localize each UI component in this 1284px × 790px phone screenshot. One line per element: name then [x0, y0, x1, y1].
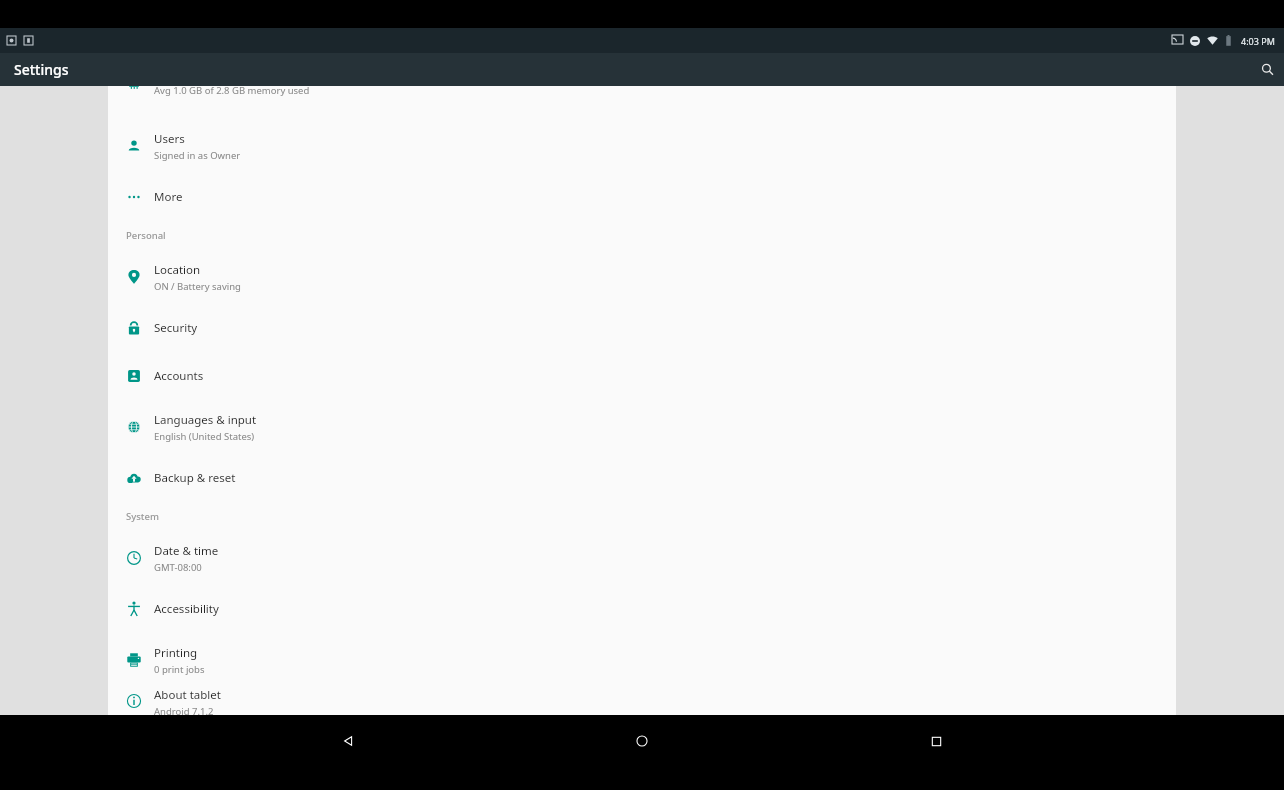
button[interactable]: Back: [327, 720, 369, 762]
staticText: More: [154, 189, 183, 205]
staticText: 0 print jobs: [154, 663, 205, 676]
staticText: Settings: [14, 60, 69, 79]
button[interactable]: Users: [108, 119, 1176, 173]
staticText: Signed in as Owner: [154, 149, 241, 162]
button[interactable]: Recent apps: [915, 720, 957, 762]
staticText: GMT-08:00: [154, 561, 202, 574]
button[interactable]: Home: [621, 720, 663, 762]
button[interactable]: More: [108, 173, 1176, 221]
staticText: ON / Battery saving: [154, 280, 241, 293]
staticText: Users: [154, 131, 185, 147]
button[interactable]: Printing: [108, 633, 1176, 687]
staticText: 4:03 PM: [1241, 35, 1275, 47]
staticText: Accessibility: [154, 601, 219, 617]
button[interactable]: Languages & input: [108, 400, 1176, 454]
staticText: Printing: [154, 645, 198, 661]
staticText: Backup & reset: [154, 470, 236, 486]
staticText: About tablet: [154, 687, 221, 703]
staticText: Languages & input: [154, 412, 257, 428]
staticText: System: [126, 510, 159, 523]
staticText: Android 7.1.2: [154, 705, 214, 715]
button[interactable]: Backup & reset: [108, 454, 1176, 502]
staticText: Date & time: [154, 543, 219, 559]
staticText: English (United States): [154, 430, 255, 443]
staticText: Personal: [126, 229, 166, 242]
button[interactable]: Accounts: [108, 352, 1176, 400]
button[interactable]: Location: [108, 250, 1176, 304]
staticText: Avg 1.0 GB of 2.8 GB memory used: [154, 86, 310, 97]
button[interactable]: Accessibility: [108, 585, 1176, 633]
staticText: Security: [154, 320, 198, 336]
staticText: Location: [154, 262, 201, 278]
button[interactable]: About tablet: [108, 687, 1176, 715]
button[interactable]: Date & time: [108, 531, 1176, 585]
button[interactable]: Memory: [108, 86, 1176, 98]
staticText: Accounts: [154, 368, 204, 384]
button[interactable]: Search: [1251, 53, 1284, 86]
button[interactable]: Security: [108, 304, 1176, 352]
